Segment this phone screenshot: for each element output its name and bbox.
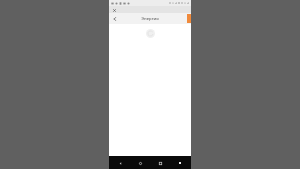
button[interactable]: Back (115, 158, 125, 168)
staticText: Энергия (141, 16, 159, 22)
button[interactable]: Close (111, 7, 117, 13)
button[interactable]: Recent apps (155, 158, 165, 168)
button[interactable]: Back (110, 14, 119, 23)
button[interactable]: More (175, 158, 185, 168)
button[interactable]: Home (135, 158, 145, 168)
